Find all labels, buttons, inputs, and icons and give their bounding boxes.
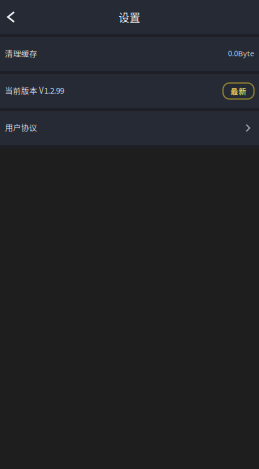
staticText: 当前版本 V1.2.99 [5,84,64,96]
button[interactable]: 最新 [223,83,254,99]
staticText: 0.0Byte [228,48,254,58]
button[interactable]: 清理缓存 [0,37,259,71]
button[interactable]: 用户协议 [0,111,259,145]
button[interactable]: Back [0,0,22,34]
staticText: 最新 [230,85,246,96]
staticText: 清理缓存 [5,47,37,59]
staticText: 设置 [118,9,140,25]
staticText: 用户协议 [5,121,37,133]
